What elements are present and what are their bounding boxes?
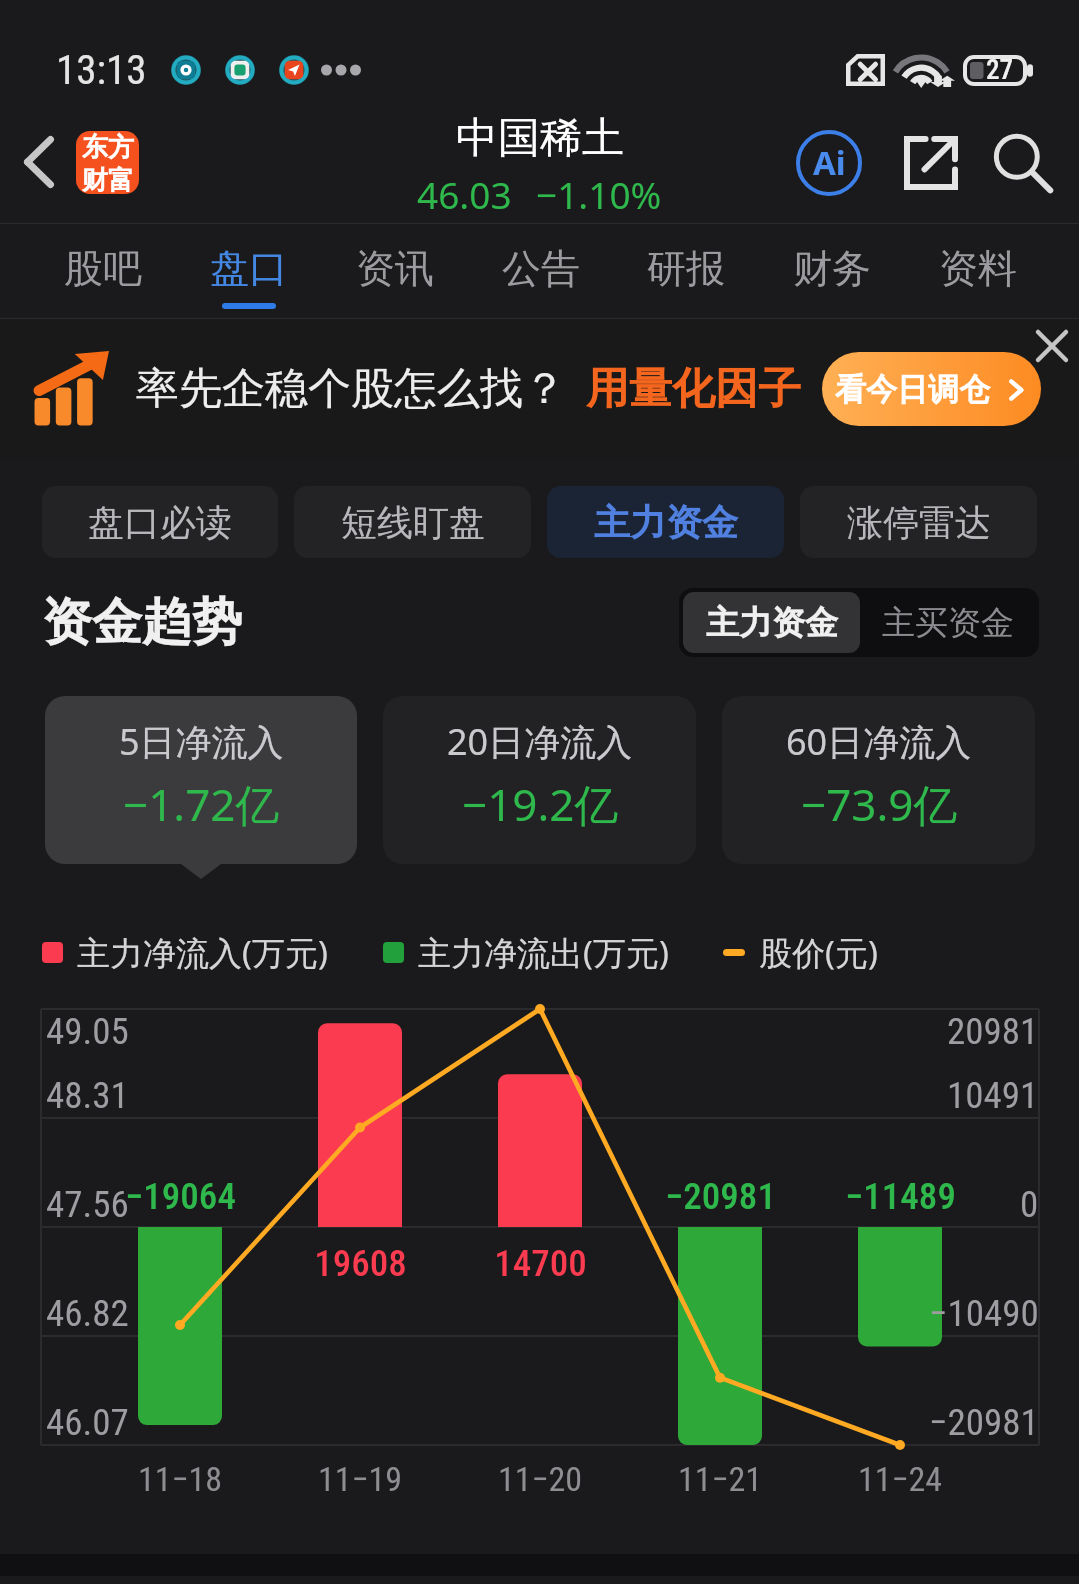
button[interactable]: 研报 [647, 224, 725, 318]
staticText: 率先企稳个股怎么找？ [136, 362, 566, 416]
staticText: 11−24 [858, 1459, 943, 1499]
button[interactable]: East Money logo [76, 131, 139, 194]
button[interactable]: 主力资金 [683, 592, 860, 653]
staticText: 主力资金 [706, 602, 838, 644]
staticText: 27 [986, 54, 1014, 86]
staticText: 5日净流入 [119, 717, 284, 766]
button[interactable]: 20日净流入 [383, 696, 696, 864]
staticText: 中国稀土 [456, 112, 624, 165]
staticText: −19064 [125, 1175, 236, 1218]
staticText: −1.10% [536, 169, 662, 219]
staticText: 主力净流出(万元) [418, 930, 669, 975]
staticText: 看今日调仓 [835, 370, 990, 409]
staticText: 资料 [939, 244, 1017, 293]
button[interactable]: 涨停雷达 [800, 486, 1037, 558]
staticText: 财务 [793, 244, 871, 293]
staticText: 48.31 [46, 1074, 129, 1117]
button[interactable]: 60日净流入 [722, 696, 1035, 864]
button[interactable]: 资讯 [356, 224, 434, 318]
staticText: 46.03 [417, 169, 512, 219]
staticText: 主买资金 [882, 602, 1014, 644]
staticText: 19608 [314, 1242, 407, 1285]
staticText: 46.07 [46, 1401, 129, 1444]
staticText: 用量化因子 [586, 362, 801, 416]
button[interactable]: 盘口必读 [42, 486, 278, 558]
button[interactable]: 率先企稳个股怎么找？ [0, 319, 1079, 459]
staticText: 短线盯盘 [341, 500, 485, 545]
button[interactable]: 财务 [793, 224, 871, 318]
button[interactable]: 公告 [502, 224, 580, 318]
staticText: 20日净流入 [447, 717, 633, 766]
staticText: 资金趋势 [42, 591, 242, 654]
staticText: 0 [1020, 1183, 1039, 1226]
button[interactable]: 资料 [939, 224, 1017, 318]
button[interactable]: 盘口 [210, 224, 288, 318]
button[interactable]: 主买资金 [860, 592, 1035, 653]
staticText: −19.2亿 [462, 774, 619, 834]
staticText: 10491 [947, 1074, 1039, 1117]
staticText: −20981 [665, 1175, 776, 1218]
staticText: 20981 [947, 1010, 1039, 1053]
button[interactable]: 看今日调仓 [822, 352, 1041, 426]
staticText: 主力净流入(万元) [77, 930, 328, 975]
staticText: 49.05 [46, 1010, 129, 1053]
staticText: 11−19 [318, 1459, 403, 1499]
staticText: 60日净流入 [786, 717, 972, 766]
staticText: −1.72亿 [123, 774, 280, 834]
staticText: −10490 [929, 1292, 1039, 1335]
staticText: 盘口必读 [88, 500, 232, 545]
button[interactable]: 5日净流入 [45, 696, 357, 864]
staticText: 主力资金 [594, 500, 738, 545]
button[interactable]: Search [983, 123, 1063, 203]
staticText: 资讯 [356, 244, 434, 293]
staticText: −20981 [929, 1401, 1039, 1444]
staticText: 财富 [82, 164, 134, 194]
staticText: 东方 [82, 131, 134, 164]
button[interactable]: 股吧 [64, 224, 142, 318]
staticText: 13:13 [56, 46, 147, 94]
staticText: 47.56 [46, 1183, 129, 1226]
staticText: 公告 [502, 244, 580, 293]
staticText: 股吧 [64, 244, 142, 293]
staticText: 股价(元) [759, 930, 878, 975]
staticText: 研报 [647, 244, 725, 293]
button[interactable]: AI assistant [789, 123, 869, 203]
staticText: −73.9亿 [801, 774, 958, 834]
staticText: 涨停雷达 [847, 500, 991, 545]
button[interactable]: 短线盯盘 [294, 486, 531, 558]
staticText: Ai [813, 140, 846, 185]
button[interactable]: Back [3, 126, 75, 198]
button[interactable]: Share [891, 123, 971, 203]
button[interactable]: 主力资金 [547, 486, 784, 558]
staticText: 11−21 [678, 1459, 763, 1499]
staticText: 11−20 [498, 1459, 583, 1499]
staticText: 盘口 [210, 244, 288, 293]
staticText: 11−18 [138, 1459, 223, 1499]
staticText: 46.82 [46, 1292, 129, 1335]
staticText: 14700 [494, 1242, 587, 1285]
button[interactable]: Close banner [1025, 319, 1079, 373]
staticText: −11489 [845, 1175, 956, 1218]
